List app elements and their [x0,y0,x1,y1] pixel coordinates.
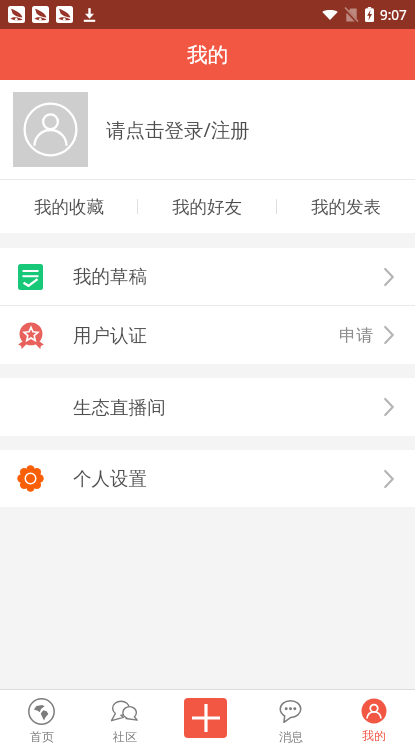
staticText: 我的 [362,728,386,743]
staticText: 个人设置 [73,467,147,490]
staticText: 9:07 [380,6,407,24]
button[interactable]: 个人设置 [0,450,415,507]
staticText: 社区 [113,729,137,744]
button[interactable]: 首页 [0,690,83,745]
staticText: 申请 [339,325,373,346]
staticText: 我的草稿 [73,265,147,288]
button[interactable]: 我的收藏 [0,180,137,233]
staticText: 生态直播间 [73,396,166,419]
button[interactable]: 请点击登录/注册 [0,80,415,179]
button[interactable]: 我的草稿 [0,248,415,305]
staticText: 首页 [30,729,54,744]
staticText: 我的好友 [172,196,242,218]
button[interactable]: 消息 [249,690,332,745]
button[interactable]: Create post [184,698,227,738]
staticText: 用户认证 [73,324,147,347]
staticText: 消息 [279,729,303,744]
button[interactable]: 生态直播间 [0,378,415,436]
button[interactable]: 我的好友 [138,180,276,233]
staticText: 我的发表 [311,196,381,218]
staticText: 请点击登录/注册 [106,116,250,143]
staticText: 我的收藏 [34,196,104,218]
button[interactable]: 用户认证 [0,306,415,364]
button[interactable]: 我的 [332,690,415,745]
button[interactable]: 社区 [83,690,166,745]
button[interactable]: 我的发表 [277,180,415,233]
staticText: 我的 [187,42,228,68]
